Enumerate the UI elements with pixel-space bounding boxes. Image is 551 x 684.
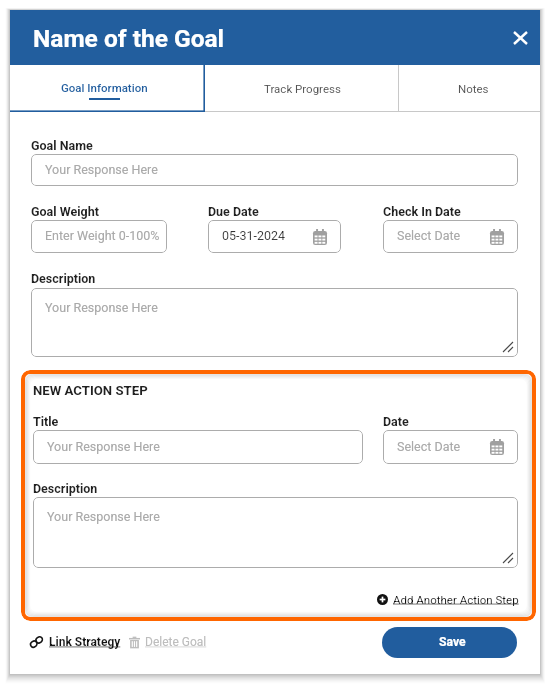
staticText: Goal Information — [61, 81, 148, 94]
staticText: Goal Name — [31, 138, 93, 153]
button[interactable]: Save — [382, 627, 517, 658]
button[interactable]: Select Date — [383, 430, 518, 464]
staticText: Enter Weight 0-100% — [45, 228, 160, 243]
button[interactable]: Add Another Action Step — [377, 590, 519, 608]
staticText: Date — [383, 414, 409, 429]
staticText: Track Progress — [264, 82, 341, 95]
staticText: NEW ACTION STEP — [33, 383, 148, 398]
staticText: Your Response Here — [45, 162, 158, 177]
button[interactable]: Close — [505, 23, 535, 53]
button[interactable]: Your Response Here — [33, 430, 363, 464]
button[interactable]: Your Response Here — [31, 154, 518, 186]
button[interactable]: Your Response Here — [31, 288, 518, 357]
staticText: 05-31-2024 — [222, 228, 286, 243]
staticText: Due Date — [208, 204, 259, 219]
staticText: Name of the Goal — [33, 24, 225, 53]
staticText: Description — [33, 481, 98, 496]
staticText: Goal Weight — [31, 204, 99, 219]
button[interactable]: Track Progress — [205, 65, 399, 112]
staticText: Save — [439, 635, 466, 649]
button[interactable]: Your Response Here — [33, 497, 518, 568]
staticText: Select Date — [397, 228, 461, 243]
button[interactable]: Notes — [399, 65, 540, 112]
staticText: Your Response Here — [45, 300, 158, 315]
button[interactable]: Delete Goal — [129, 631, 207, 653]
button[interactable]: 05-31-2024 — [208, 220, 341, 253]
staticText: Add Another Action Step — [393, 593, 519, 606]
staticText: Check In Date — [383, 204, 461, 219]
staticText: Your Response Here — [47, 509, 160, 524]
staticText: Delete Goal — [145, 635, 207, 649]
button[interactable]: Link Strategy — [29, 631, 121, 653]
staticText: Your Response Here — [47, 439, 160, 454]
staticText: Description — [31, 271, 96, 286]
staticText: Title — [33, 414, 59, 429]
staticText: Link Strategy — [49, 635, 121, 649]
staticText: Select Date — [397, 439, 461, 454]
button[interactable]: Goal Information — [10, 65, 205, 112]
button[interactable]: Select Date — [383, 220, 518, 253]
button[interactable]: Enter Weight 0-100% — [31, 220, 167, 253]
staticText: Notes — [458, 82, 489, 95]
